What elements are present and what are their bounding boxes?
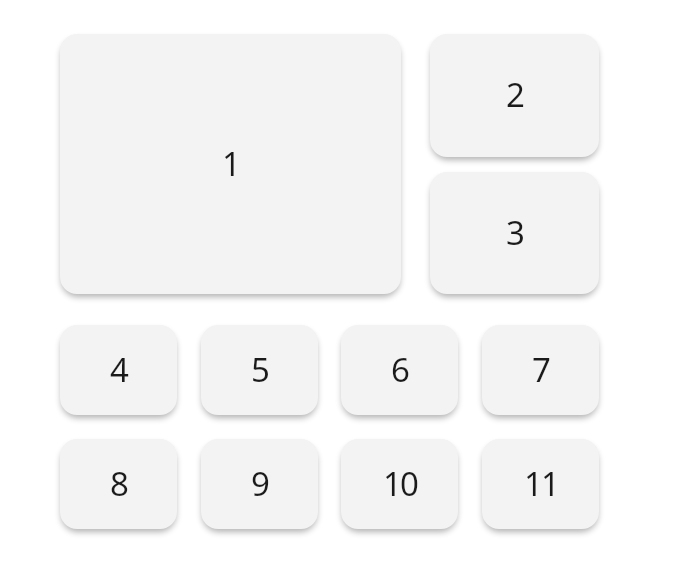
staticText: 5 xyxy=(251,347,268,392)
button[interactable]: 6 xyxy=(341,325,458,415)
staticText: 9 xyxy=(251,461,268,506)
button[interactable]: 7 xyxy=(482,325,599,415)
staticText: 2 xyxy=(506,72,523,117)
button[interactable]: 10 xyxy=(341,439,458,529)
button[interactable]: 11 xyxy=(482,439,599,529)
staticText: 7 xyxy=(532,347,549,392)
staticText: 6 xyxy=(391,347,408,392)
button[interactable]: 8 xyxy=(60,439,177,529)
staticText: 11 xyxy=(524,461,558,506)
button[interactable]: 4 xyxy=(60,325,177,415)
staticText: 3 xyxy=(506,210,523,255)
button[interactable]: 3 xyxy=(430,172,599,294)
button[interactable]: 5 xyxy=(201,325,318,415)
button[interactable]: 1 xyxy=(60,34,401,294)
staticText: 8 xyxy=(110,461,127,506)
button[interactable]: 2 xyxy=(430,34,599,157)
staticText: 4 xyxy=(110,347,127,392)
staticText: 10 xyxy=(383,461,417,506)
button[interactable]: 9 xyxy=(201,439,318,529)
staticText: 1 xyxy=(222,141,239,186)
